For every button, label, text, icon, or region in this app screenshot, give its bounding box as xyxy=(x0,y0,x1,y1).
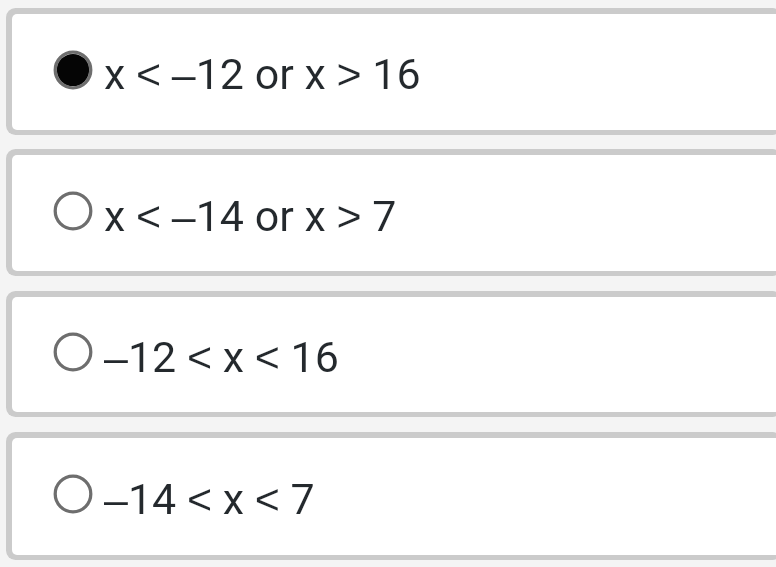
button[interactable]: Choose this answer xyxy=(6,291,776,417)
button[interactable]: Choose this answer xyxy=(53,474,93,514)
button[interactable]: Choose this answer xyxy=(6,432,776,560)
button[interactable]: Choose this answer xyxy=(53,191,93,231)
staticText: x < –14 or x > 7 xyxy=(104,191,397,241)
button[interactable]: Selected answer xyxy=(53,50,93,90)
button[interactable]: Selected answer xyxy=(6,8,776,135)
staticText: –14 < x < 7 xyxy=(104,474,315,524)
staticText: x < –12 or x > 16 xyxy=(104,49,421,99)
staticText: –12 < x < 16 xyxy=(104,332,339,382)
button[interactable]: Choose this answer xyxy=(6,149,776,276)
button[interactable]: Choose this answer xyxy=(53,332,93,372)
